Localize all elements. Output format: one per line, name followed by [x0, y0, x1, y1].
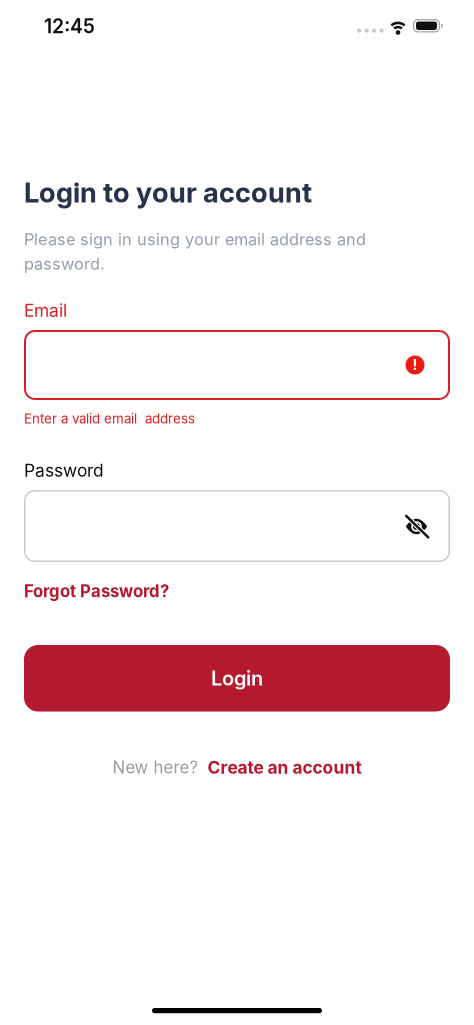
button[interactable]: Create an account [207, 757, 361, 778]
staticText: Email [24, 300, 67, 321]
staticText: Please sign in using your email address … [24, 229, 366, 274]
button[interactable]: Forgot Password? [24, 581, 169, 601]
staticText: Create an account [207, 757, 361, 778]
staticText: ! [412, 356, 417, 373]
staticText: Forgot Password? [24, 581, 169, 601]
staticText: Password [24, 460, 104, 481]
button[interactable]: Login [24, 645, 450, 711]
staticText: Login [211, 666, 263, 690]
staticText: 12:45 [44, 14, 95, 38]
staticText: New here? [112, 757, 198, 778]
staticText: Login to your account [24, 176, 312, 209]
staticText: Enter a valid email address [24, 410, 195, 427]
button[interactable]: Show password [402, 513, 430, 539]
